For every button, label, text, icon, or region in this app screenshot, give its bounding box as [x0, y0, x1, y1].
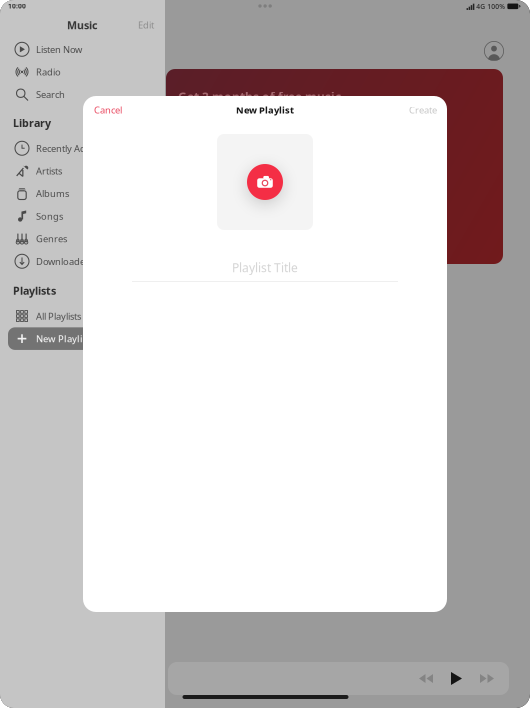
staticText: Genres	[36, 232, 67, 245]
staticText: New Playlist	[236, 104, 294, 116]
button[interactable]: Listen Now	[8, 38, 157, 61]
button[interactable]: Fast forward	[471, 663, 503, 694]
button[interactable]: Create	[401, 98, 447, 122]
staticText: Edit	[138, 19, 154, 31]
staticText: Albums	[36, 187, 69, 200]
button[interactable]: Radio	[8, 61, 157, 83]
staticText: Playlist Title	[232, 259, 298, 275]
staticText: 100%	[487, 2, 505, 11]
staticText: 4G	[476, 2, 485, 11]
staticText: All Playlists	[36, 310, 81, 322]
staticText: Get 3 months of free music.	[178, 89, 344, 105]
button[interactable]: Albums	[8, 182, 157, 205]
button[interactable]: Edit	[138, 14, 165, 36]
staticText: Cancel	[94, 104, 122, 116]
staticText: Recently Added	[36, 142, 103, 154]
staticText: Downloaded	[36, 255, 91, 267]
staticText: Library	[13, 116, 51, 130]
button[interactable]: Choose artwork	[217, 134, 313, 230]
staticText: Radio	[36, 66, 61, 78]
button[interactable]: Downloaded	[8, 250, 157, 273]
staticText: Playlists	[13, 284, 56, 298]
button[interactable]: Recently Added	[8, 137, 157, 160]
staticText: Create	[409, 104, 437, 116]
staticText: 10:00	[8, 2, 26, 10]
button[interactable]: Artists	[8, 160, 157, 182]
button[interactable]: All Playlists	[8, 305, 157, 327]
staticText: New Playlist	[36, 332, 92, 345]
button[interactable]: Rewind	[410, 663, 442, 694]
button[interactable]: Play	[442, 663, 471, 694]
staticText: Music	[67, 18, 98, 32]
button[interactable]: Get 3 months of free music.	[166, 69, 503, 264]
button[interactable]: Account	[478, 35, 510, 67]
staticText: Artists	[36, 165, 62, 177]
button[interactable]: New Playlist	[8, 327, 157, 350]
button[interactable]: Search	[8, 83, 157, 106]
staticText: Listen Now	[36, 43, 82, 55]
staticText: Search	[36, 88, 65, 101]
staticText: Songs	[36, 210, 63, 222]
button[interactable]: Genres	[8, 227, 157, 250]
button[interactable]: Cancel	[83, 98, 130, 122]
button[interactable]: Songs	[8, 205, 157, 227]
